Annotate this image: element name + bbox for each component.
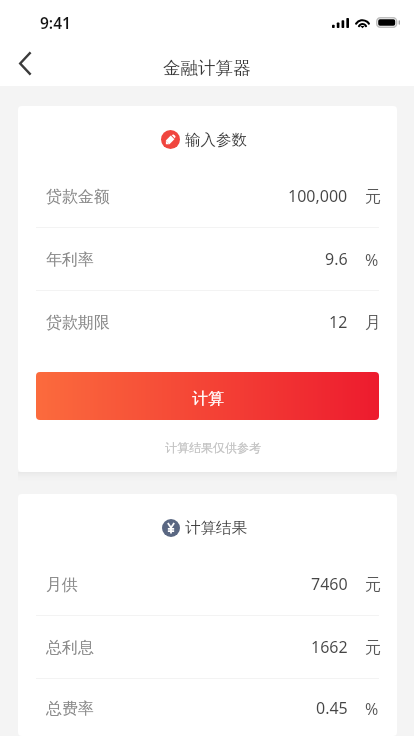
staticText: 贷款期限 — [46, 313, 110, 333]
button[interactable]: 年利率 — [18, 228, 397, 290]
staticText: % — [365, 249, 379, 271]
staticText: 贷款金额 — [46, 187, 110, 207]
staticText: 9:41 — [40, 12, 71, 33]
staticText: 年利率 — [46, 250, 94, 270]
button[interactable]: 总费率 — [18, 679, 397, 736]
staticText: 12 — [329, 311, 348, 333]
staticText: 100,000 — [288, 185, 348, 207]
button[interactable]: 贷款期限 — [18, 291, 397, 353]
button[interactable]: 月供 — [18, 553, 397, 615]
button[interactable]: 贷款金额 — [18, 165, 397, 227]
staticText: 计算 — [192, 389, 224, 409]
staticText: 元 — [365, 638, 381, 658]
staticText: 计算结果仅供参考 — [29, 440, 397, 455]
staticText: 总费率 — [46, 699, 94, 719]
staticText: 输入参数 — [185, 130, 247, 150]
staticText: % — [365, 698, 379, 720]
staticText: 元 — [365, 187, 381, 207]
staticText: 7460 — [311, 573, 348, 595]
staticText: 月 — [365, 313, 381, 333]
button[interactable]: 计算 — [36, 372, 379, 420]
staticText: 金融计算器 — [163, 57, 251, 79]
staticText: 计算结果 — [185, 518, 247, 538]
staticText: 总利息 — [46, 638, 94, 658]
button[interactable]: Back — [0, 44, 49, 86]
staticText: 0.45 — [316, 697, 348, 719]
staticText: 1662 — [311, 636, 348, 658]
button[interactable]: 总利息 — [18, 616, 397, 678]
staticText: 9.6 — [325, 248, 348, 270]
staticText: 元 — [365, 575, 381, 595]
staticText: 月供 — [46, 575, 78, 595]
